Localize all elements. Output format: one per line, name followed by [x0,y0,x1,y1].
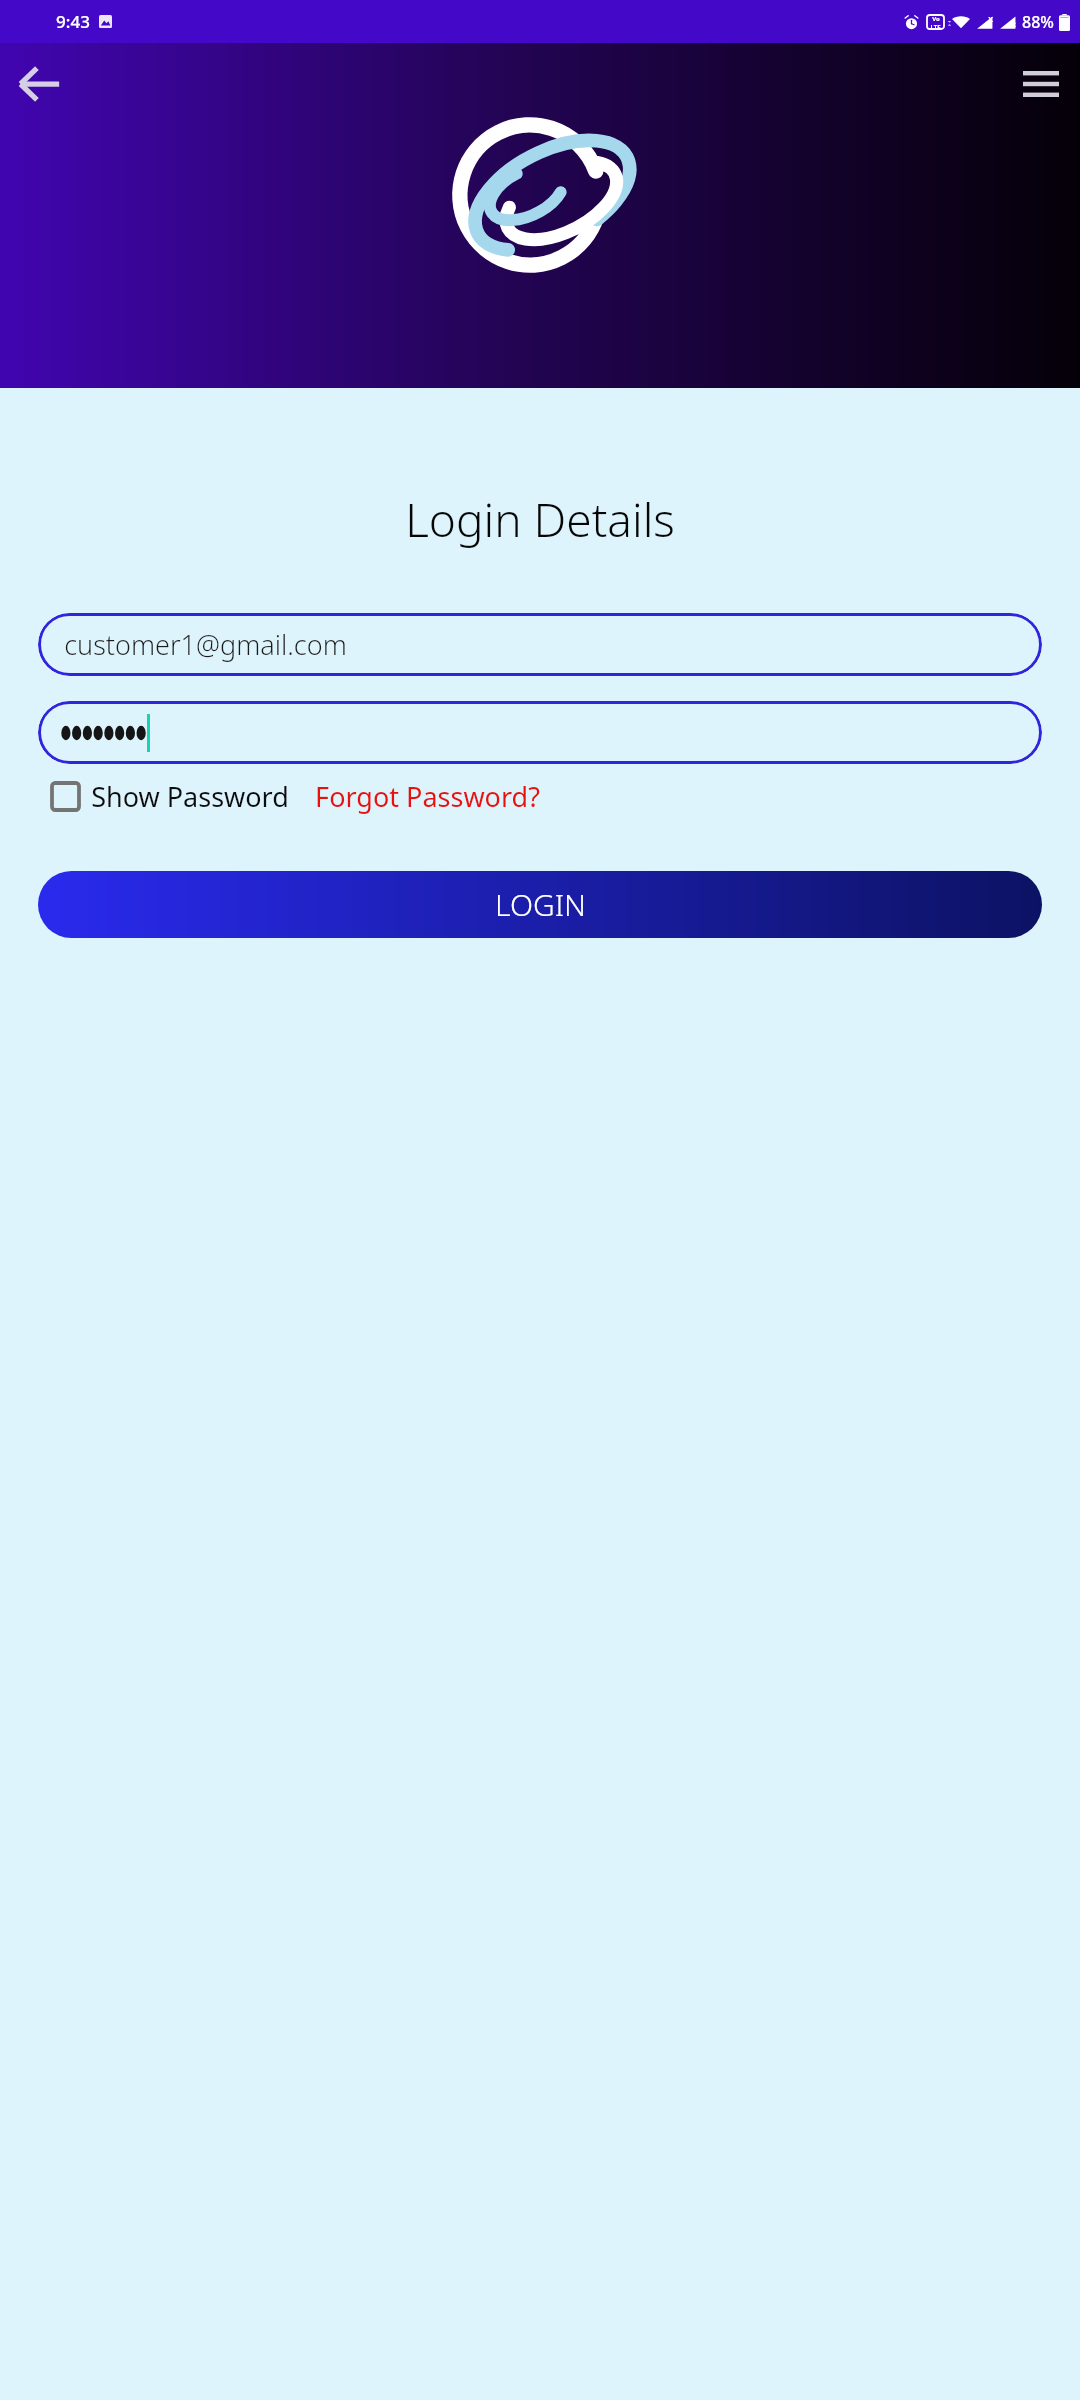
button[interactable]: LOGIN [38,871,1042,938]
staticText: Login Details [405,488,675,551]
staticText: customer1@gmail.com [64,626,347,663]
button[interactable]: Back [8,53,70,115]
staticText: Show Password [91,778,289,815]
button[interactable]: customer1@gmail.com [38,613,1042,676]
button[interactable]: Menu [1010,53,1072,115]
button[interactable]: Show Password [52,774,289,819]
staticText: LOGIN [495,884,586,925]
staticText: Vo [932,15,940,23]
staticText: X [988,15,993,25]
button[interactable]: Forgot Password? [315,774,540,819]
button[interactable] [38,701,1042,764]
staticText: 9:43 [56,10,90,33]
staticText: Forgot Password? [315,778,540,815]
staticText: 88% [1022,11,1054,33]
staticText: LTE [930,23,941,29]
staticText: R [1011,20,1016,30]
